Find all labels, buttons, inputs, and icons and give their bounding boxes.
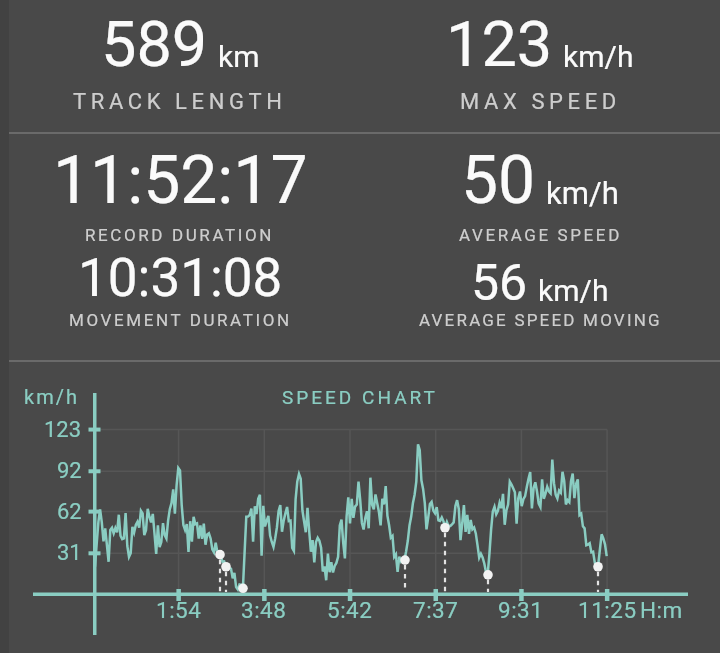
staticText: 11:25 [578, 597, 637, 623]
staticText: 10:31:08 [78, 247, 283, 309]
staticText: 589 [101, 8, 208, 82]
staticText: 92 [57, 458, 82, 484]
staticText: AVERAGE SPEED [459, 225, 622, 245]
staticText: 123 [446, 8, 553, 82]
staticText: 11:52:17 [53, 142, 308, 219]
staticText: 50 [461, 142, 536, 219]
staticText: km/h [546, 175, 619, 211]
staticText: km/h [24, 385, 79, 408]
staticText: 9:31 [498, 597, 544, 623]
staticText: 62 [57, 499, 82, 525]
staticText: 31 [57, 540, 82, 566]
staticText: 7:37 [413, 597, 459, 623]
staticText: 123 [44, 417, 82, 443]
staticText: 5:42 [327, 597, 373, 623]
staticText: 3:48 [241, 597, 287, 623]
staticText: MAX SPEED [460, 89, 621, 115]
staticText: MOVEMENT DURATION [69, 310, 292, 330]
staticText: km [218, 39, 260, 74]
staticText: km/h [538, 273, 609, 308]
staticText: km/h [563, 39, 634, 74]
staticText: 1:54 [156, 597, 202, 623]
staticText: SPEED CHART [282, 386, 438, 408]
staticText: AVERAGE SPEED MOVING [419, 310, 662, 330]
staticText: RECORD DURATION [85, 225, 275, 245]
staticText: 56 [471, 254, 528, 313]
staticText: H:m [640, 597, 683, 623]
staticText: TRACK LENGTH [73, 89, 287, 115]
